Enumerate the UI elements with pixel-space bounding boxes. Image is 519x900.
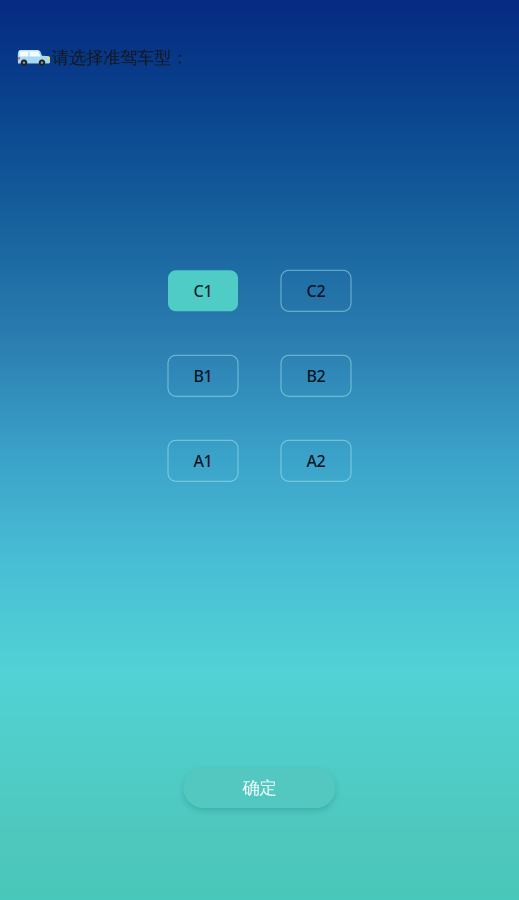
button[interactable]: 确定 [183,768,335,808]
button[interactable]: C1 [168,270,238,311]
staticText: C1 [193,280,212,301]
staticText: A1 [193,450,212,471]
staticText: B1 [193,365,212,386]
staticText: A2 [306,450,325,471]
button[interactable]: A2 [281,440,351,481]
button[interactable]: B1 [168,355,238,396]
staticText: 请选择准驾车型： [52,47,188,68]
staticText: 确定 [242,777,276,799]
button[interactable]: C2 [281,270,351,311]
staticText: C2 [306,280,325,301]
button[interactable]: B2 [281,355,351,396]
button[interactable]: A1 [168,440,238,481]
staticText: B2 [306,365,325,386]
